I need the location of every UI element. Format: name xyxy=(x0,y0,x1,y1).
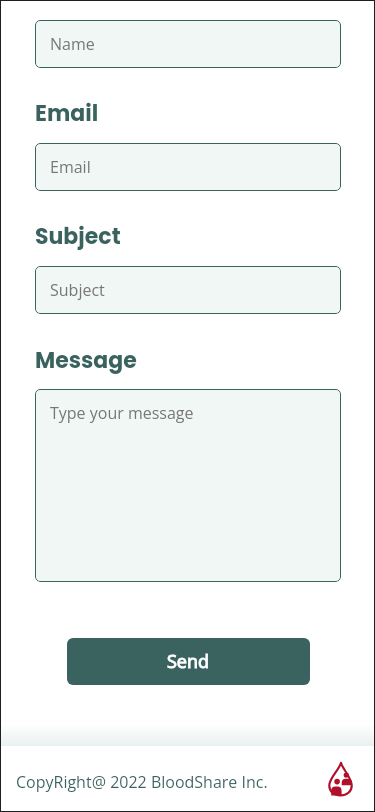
staticText: Name xyxy=(50,33,95,55)
button[interactable]: Name xyxy=(35,20,341,68)
staticText: Send xyxy=(167,649,210,674)
staticText: Email xyxy=(35,98,99,129)
staticText: Subject xyxy=(50,279,105,301)
button[interactable]: Type your message xyxy=(35,389,341,582)
staticText: Email xyxy=(50,156,91,178)
button[interactable]: Send xyxy=(67,638,310,685)
staticText: Subject xyxy=(35,221,121,252)
button[interactable]: Email xyxy=(35,143,341,191)
other: BloodShare logo xyxy=(328,761,353,796)
staticText: Message xyxy=(35,345,137,376)
staticText: CopyRight@ 2022 BloodShare Inc. xyxy=(16,771,268,793)
staticText: Type your message xyxy=(50,402,194,424)
button[interactable]: Subject xyxy=(35,266,341,314)
